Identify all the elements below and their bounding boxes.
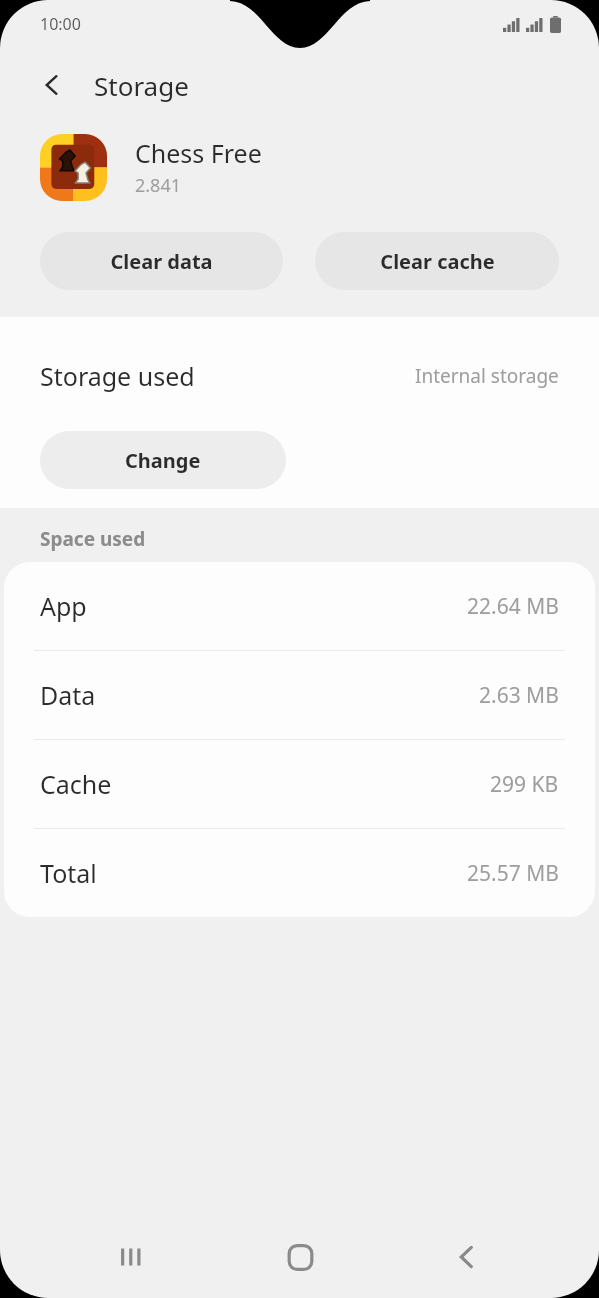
staticText: 2.841 xyxy=(135,173,182,198)
button[interactable]: Change xyxy=(40,431,286,489)
button[interactable]: Data xyxy=(4,651,595,739)
staticText: 22.64 MB xyxy=(467,592,559,621)
staticText: 299 KB xyxy=(490,770,559,799)
staticText: Storage xyxy=(94,68,189,103)
button[interactable]: Back xyxy=(431,1221,503,1293)
staticText: Total xyxy=(40,856,97,890)
staticText: Clear cache xyxy=(380,248,495,275)
staticText: Cache xyxy=(40,767,112,801)
button[interactable]: Total xyxy=(4,829,595,917)
button[interactable]: Recents xyxy=(96,1221,168,1293)
staticText: Change xyxy=(125,447,201,474)
button[interactable]: Clear cache xyxy=(315,232,559,290)
button[interactable]: Home xyxy=(264,1221,336,1293)
staticText: Data xyxy=(40,678,96,712)
staticText: Clear data xyxy=(110,248,213,275)
button[interactable]: Cache xyxy=(4,740,595,828)
button[interactable]: App xyxy=(4,562,595,650)
staticText: Chess Free xyxy=(135,136,262,170)
button[interactable]: Clear data xyxy=(40,232,283,290)
staticText: Storage used xyxy=(40,359,195,393)
button[interactable]: Storage used xyxy=(40,317,559,435)
staticText: 25.57 MB xyxy=(467,859,559,888)
staticText: 10:00 xyxy=(40,13,81,35)
staticText: 2.63 MB xyxy=(479,681,559,710)
staticText: Internal storage xyxy=(415,363,559,389)
staticText: App xyxy=(40,589,87,623)
button[interactable]: Back xyxy=(26,59,78,111)
staticText: Space used xyxy=(40,526,146,552)
